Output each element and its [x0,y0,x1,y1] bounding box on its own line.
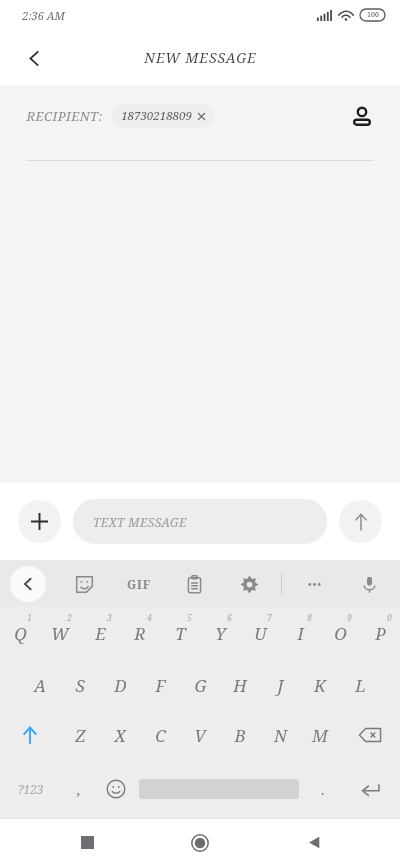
staticText: 4 [147,612,152,623]
staticText: GIF [127,576,151,592]
staticText: , [77,779,81,799]
button[interactable] [134,760,304,818]
staticText: C [155,724,166,747]
button[interactable]: R [120,607,160,660]
staticText: H [233,674,247,697]
staticText: N [274,724,287,747]
button[interactable]: H [220,660,260,710]
staticText: 7 [267,612,272,623]
staticText: W [51,622,69,645]
staticText: I [297,622,304,645]
staticText: 9 [347,612,352,623]
button[interactable]: Add attachment [18,500,61,543]
staticText: K [314,674,326,697]
staticText: X [114,724,126,747]
button[interactable]: Home [173,819,227,866]
button[interactable]: W [40,607,80,660]
button[interactable]: Back [287,819,341,866]
staticText: A [34,674,46,697]
staticText: NEW MESSAGE [144,48,257,67]
staticText: TEXT MESSAGE [93,514,187,530]
button[interactable]: Clipboard [175,565,213,603]
button[interactable]: I [280,607,320,660]
button[interactable]: Send [339,500,382,543]
button[interactable]: Backspace [340,710,400,760]
button[interactable]: Shift [0,710,60,760]
button[interactable]: Stickers [65,565,103,603]
staticText: V [194,724,206,747]
button[interactable]: U [240,607,280,660]
button[interactable]: S [60,660,100,710]
staticText: 1 [27,612,32,623]
staticText: J [277,674,284,697]
button[interactable]: Back [12,36,56,80]
button[interactable]: GIF [120,565,158,603]
staticText: O [334,622,347,645]
staticText: 8 [307,612,312,623]
button[interactable]: Emoji [97,760,134,818]
button[interactable]: X [100,710,140,760]
staticText: L [355,674,366,697]
button[interactable]: V [180,710,220,760]
staticText: Q [14,622,27,645]
button[interactable]: L [340,660,380,710]
button[interactable]: . [304,760,341,818]
button[interactable]: T [160,607,200,660]
staticText: E [95,622,106,645]
button[interactable]: P [360,607,400,660]
button[interactable]: Collapse toolbar [10,566,46,602]
staticText: G [194,674,207,697]
button[interactable]: 18730218809 [112,104,214,128]
staticText: 5 [187,612,192,623]
staticText: R [134,622,146,645]
button[interactable]: B [220,710,260,760]
staticText: 6 [227,612,232,623]
button[interactable]: G [180,660,220,710]
button[interactable]: Enter [341,760,400,818]
staticText: P [375,622,386,645]
button[interactable]: J [260,660,300,710]
button[interactable]: E [80,607,120,660]
staticText: 18730218809 [121,108,192,124]
staticText: D [114,674,127,697]
button[interactable]: A [20,660,60,710]
button[interactable]: C [140,710,180,760]
button[interactable]: TEXT MESSAGE [73,499,327,544]
button[interactable]: Recent apps [60,819,114,866]
staticText: U [254,622,267,645]
button[interactable]: More options [295,565,333,603]
staticText: RECIPIENT: [26,107,103,125]
staticText: M [312,724,328,747]
button[interactable]: M [300,710,340,760]
staticText: B [234,724,246,747]
button[interactable]: O [320,607,360,660]
button[interactable]: Q [0,607,40,660]
staticText: 100 [367,10,379,20]
button[interactable]: K [300,660,340,710]
staticText: ?123 [17,781,44,797]
staticText: 3 [107,612,112,623]
staticText: . [321,779,325,799]
button[interactable]: Settings [230,565,268,603]
button[interactable]: Z [60,710,100,760]
button[interactable]: D [100,660,140,710]
staticText: F [155,674,166,697]
staticText: S [75,674,85,697]
button[interactable]: N [260,710,300,760]
staticText: T [175,622,186,645]
button[interactable]: Y [200,607,240,660]
staticText: 2:36 AM [22,8,65,23]
button[interactable]: , [60,760,97,818]
staticText: Z [75,724,86,747]
button[interactable]: F [140,660,180,710]
staticText: 2 [67,612,72,623]
staticText: Y [215,622,226,645]
button[interactable]: Voice input [350,565,388,603]
button[interactable]: Choose contact [342,96,382,136]
staticText: 0 [387,612,392,623]
button[interactable]: ?123 [0,760,60,818]
